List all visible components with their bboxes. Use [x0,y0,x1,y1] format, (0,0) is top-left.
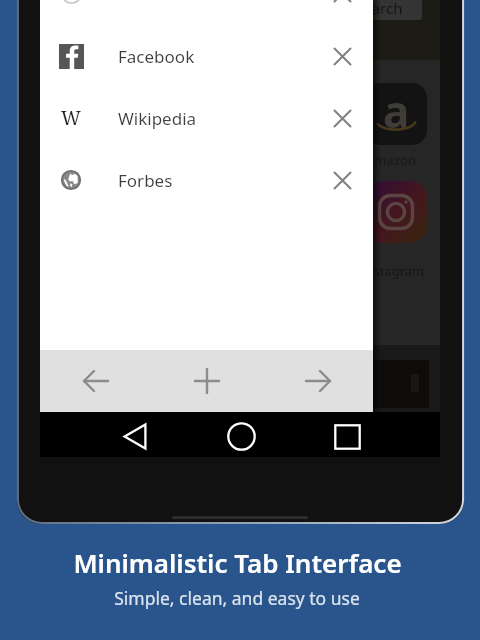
button[interactable]: Close Amazon [311,0,373,24]
staticText: Instagram [361,262,425,280]
staticText: Forbes [118,169,173,192]
button[interactable]: Home [219,414,263,459]
staticText: Minimalistic Tab Interface [73,545,402,580]
staticText: W [61,105,81,131]
button[interactable]: W [40,87,373,149]
button[interactable]: Close Facebook [311,25,373,87]
button[interactable]: Close Wikipedia [311,87,373,149]
button[interactable]: Facebook [40,25,373,87]
button[interactable]: Close Forbes [311,149,373,211]
staticText: Facebook [118,45,195,68]
button[interactable]: New tab [151,350,262,412]
button[interactable]: Back [113,414,157,459]
staticText: Search [355,0,403,18]
button[interactable]: Forward [262,350,373,412]
button[interactable]: Back [40,350,151,412]
staticText: a [383,83,410,141]
staticText: Amazon [366,151,416,169]
button[interactable]: Recents [325,414,369,459]
staticText: Wikipedia [118,107,197,130]
button[interactable]: Amazon [40,0,373,24]
staticText: Simple, clean, and easy to use [114,586,360,610]
button[interactable]: Forbes [40,149,373,211]
